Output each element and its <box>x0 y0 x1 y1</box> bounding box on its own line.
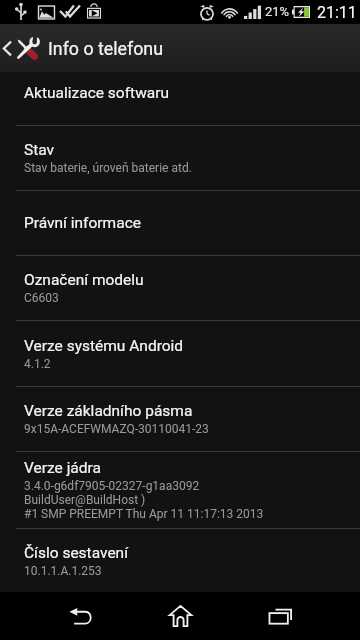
staticText: 21% <box>265 4 290 19</box>
staticText: Číslo sestavení <box>24 544 129 562</box>
staticText: Verze jádra <box>24 459 101 477</box>
staticText: Stav <box>24 141 55 159</box>
button[interactable]: Verze základního pásma <box>0 387 360 451</box>
button[interactable]: Označení modelu <box>0 256 360 320</box>
staticText: C6603 <box>24 291 59 305</box>
button[interactable]: Back <box>30 592 130 640</box>
staticText: Právní informace <box>24 214 141 232</box>
staticText: 3.4.0-g6df7905-02327-g1aa3092 <box>24 479 200 493</box>
button[interactable]: Recent apps <box>230 592 330 640</box>
staticText: 10.1.1.A.1.253 <box>24 564 102 578</box>
staticText: 9x15A-ACEFWMAZQ-30110041-23 <box>24 422 209 436</box>
staticText: Aktualizace softwaru <box>24 84 170 102</box>
staticText: BuildUser@BuildHost ) <box>24 493 146 507</box>
staticText: 21:11 <box>317 3 357 22</box>
staticText: Verze základního pásma <box>24 402 193 420</box>
button[interactable]: Aktualizace softwaru <box>0 72 360 125</box>
staticText: 4.1.2 <box>24 357 51 371</box>
button[interactable]: Právní informace <box>0 191 360 255</box>
button[interactable]: Verze systému Android <box>0 321 360 386</box>
staticText: Info o telefonu <box>48 38 163 59</box>
staticText: #1 SMP PREEMPT Thu Apr 11 11:17:13 2013 <box>24 507 264 521</box>
button[interactable]: Navigate up — Info o telefonu <box>0 24 360 72</box>
staticText: Označení modelu <box>24 271 144 289</box>
staticText: Verze systému Android <box>24 337 184 355</box>
button[interactable]: Verze jádra <box>0 452 360 528</box>
button[interactable]: Stav <box>0 126 360 190</box>
staticText: Stav baterie, úroveň baterie atd. <box>24 161 192 175</box>
button[interactable]: Číslo sestavení <box>0 529 360 592</box>
button[interactable]: Home <box>130 592 230 640</box>
